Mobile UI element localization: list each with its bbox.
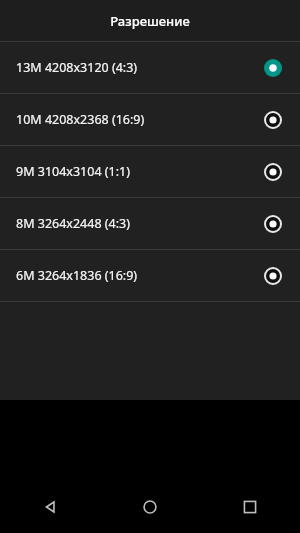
staticText: 13M 4208x3120 (4:3): [16, 59, 262, 76]
staticText: 8M 3264x2448 (4:3): [16, 215, 262, 232]
button[interactable]: 13M 4208x3120 (4:3): [0, 42, 300, 93]
button[interactable]: 8M 3264x2448 (4:3): [0, 198, 300, 249]
button[interactable]: Back: [0, 481, 100, 533]
button[interactable]: Recents: [200, 481, 300, 533]
staticText: 10M 4208x2368 (16:9): [16, 111, 262, 128]
button[interactable]: 9M 3104x3104 (1:1): [0, 146, 300, 197]
staticText: 9M 3104x3104 (1:1): [16, 163, 262, 180]
button[interactable]: 6M 3264x1836 (16:9): [0, 250, 300, 301]
staticText: 6M 3264x1836 (16:9): [16, 267, 262, 284]
button[interactable]: Home: [100, 481, 200, 533]
button[interactable]: 10M 4208x2368 (16:9): [0, 94, 300, 145]
staticText: Разрешение: [110, 12, 190, 30]
